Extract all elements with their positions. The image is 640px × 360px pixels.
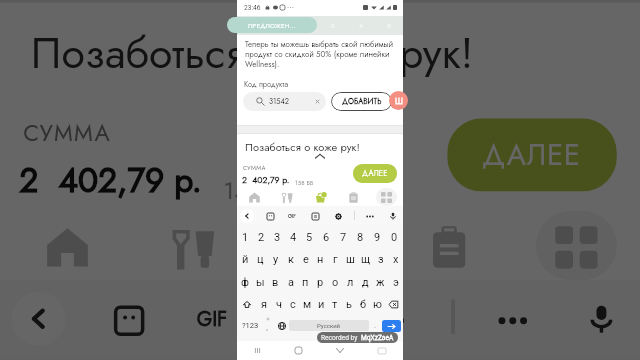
- button[interactable]: Home: [278, 341, 319, 360]
- button[interactable]: ПРЕДЛОЖЕН...: [227, 17, 317, 33]
- button[interactable]: й: [237, 248, 253, 271]
- button[interactable]: ?123: [239, 315, 261, 336]
- button[interactable]: More: [370, 188, 403, 206]
- button[interactable]: .: [369, 315, 382, 336]
- button[interactable]: х: [388, 248, 403, 271]
- button[interactable]: е: [298, 248, 313, 271]
- button[interactable]: More: [513, 211, 640, 280]
- button[interactable]: Catalog: [271, 188, 304, 206]
- button[interactable]: д: [358, 271, 373, 293]
- button[interactable]: Catalog: [131, 211, 258, 280]
- button[interactable]: о: [328, 271, 343, 293]
- button[interactable]: 4: [185, 357, 247, 360]
- button[interactable]: Hide keyboard: [361, 341, 403, 360]
- button[interactable]: Cart: [258, 211, 385, 280]
- button[interactable]: я: [257, 293, 272, 315]
- button[interactable]: Clipboard: [274, 292, 328, 346]
- button[interactable]: р: [313, 271, 328, 293]
- button[interactable]: и: [314, 293, 328, 315]
- button[interactable]: 5: [301, 226, 318, 248]
- staticText: 158 ББ: [295, 178, 314, 187]
- button[interactable]: 9: [369, 226, 386, 248]
- button[interactable]: GIF: [185, 292, 239, 346]
- button[interactable]: ,: [261, 315, 274, 336]
- button[interactable]: ДАЛЕЕ: [447, 118, 617, 192]
- button[interactable]: з: [373, 248, 388, 271]
- button[interactable]: 6: [318, 226, 335, 248]
- button[interactable]: Change language: [274, 315, 289, 336]
- button[interactable]: ю: [370, 293, 384, 315]
- button[interactable]: 2: [253, 226, 269, 248]
- button[interactable]: щ: [358, 248, 373, 271]
- button[interactable]: 3: [269, 226, 285, 248]
- button[interactable]: Chat: [389, 91, 408, 110]
- button[interactable]: к: [283, 248, 298, 271]
- button[interactable]: Voice: [386, 209, 400, 223]
- button[interactable]: ДОБАВИТЬ: [331, 92, 392, 111]
- button[interactable]: 8: [352, 226, 369, 248]
- button[interactable]: ж: [373, 271, 388, 293]
- button[interactable]: Stickers: [263, 209, 277, 223]
- button[interactable]: э: [388, 271, 403, 293]
- button[interactable]: Shift: [237, 293, 257, 315]
- button[interactable]: п: [298, 271, 313, 293]
- button[interactable]: в: [268, 271, 283, 293]
- button[interactable]: Home: [0, 211, 131, 280]
- button[interactable]: 7: [378, 357, 443, 360]
- button[interactable]: GIF: [285, 209, 299, 223]
- button[interactable]: 4: [285, 226, 301, 248]
- button[interactable]: Expand: [237, 153, 403, 160]
- button[interactable]: ш: [343, 248, 358, 271]
- button[interactable]: л: [343, 271, 358, 293]
- staticText: 5: [387, 21, 391, 30]
- button[interactable]: ДАЛЕЕ: [353, 164, 397, 183]
- button[interactable]: Search: [256, 92, 320, 111]
- button[interactable]: Stickers: [100, 292, 154, 346]
- button[interactable]: Back: [319, 341, 361, 360]
- button[interactable]: More: [486, 292, 540, 346]
- button[interactable]: Clipboard: [308, 209, 322, 223]
- button[interactable]: Русский: [289, 320, 369, 331]
- button[interactable]: Settings: [362, 292, 416, 346]
- button[interactable]: Recents: [237, 341, 278, 360]
- button[interactable]: Back: [12, 292, 66, 346]
- button[interactable]: 0: [386, 226, 403, 248]
- button[interactable]: с: [286, 293, 300, 315]
- button[interactable]: ч: [272, 293, 286, 315]
- button[interactable]: м: [300, 293, 314, 315]
- button[interactable]: а: [283, 271, 298, 293]
- button[interactable]: ы: [253, 271, 268, 293]
- button[interactable]: Voice: [574, 292, 628, 346]
- button[interactable]: у: [268, 248, 283, 271]
- button[interactable]: 1: [237, 226, 253, 248]
- button[interactable]: More: [363, 209, 377, 223]
- button[interactable]: ф: [237, 271, 253, 293]
- button[interactable]: т: [328, 293, 342, 315]
- button[interactable]: г: [328, 248, 343, 271]
- button[interactable]: Cart: [304, 188, 337, 206]
- button[interactable]: Settings: [331, 209, 345, 223]
- button[interactable]: Enter: [382, 320, 401, 332]
- button[interactable]: ц: [253, 248, 268, 271]
- button[interactable]: Backspace: [384, 293, 403, 315]
- button[interactable]: Expand: [0, 76, 640, 103]
- button[interactable]: Orders: [337, 188, 370, 206]
- button[interactable]: Back: [240, 209, 254, 223]
- button[interactable]: Orders: [385, 211, 513, 280]
- button[interactable]: н: [313, 248, 328, 271]
- button[interactable]: б: [356, 293, 370, 315]
- button[interactable]: ь: [342, 293, 356, 315]
- button[interactable]: 7: [335, 226, 352, 248]
- button[interactable]: Home: [237, 188, 271, 206]
